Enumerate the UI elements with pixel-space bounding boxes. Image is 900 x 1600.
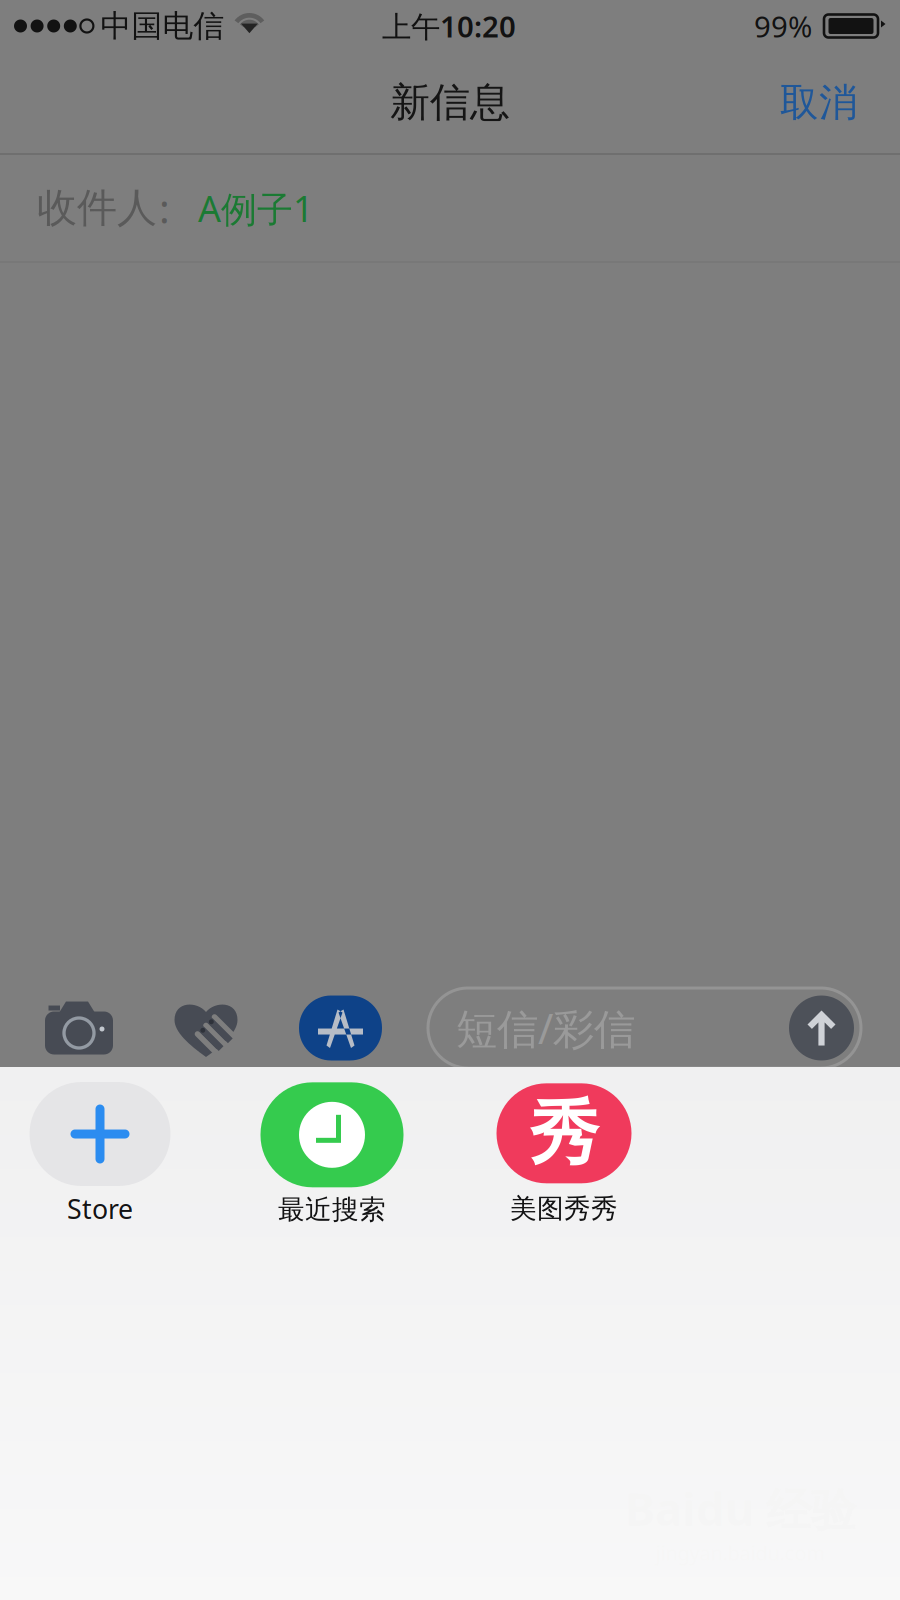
button[interactable]: Store xyxy=(0,1082,216,1226)
staticText: Store xyxy=(67,1191,133,1226)
button[interactable]: Send xyxy=(789,995,854,1060)
staticText: A例子1 xyxy=(198,184,314,232)
staticText: 秀 xyxy=(529,1091,598,1176)
button[interactable]: Digital Touch xyxy=(173,999,239,1057)
staticText: 取消 xyxy=(780,79,858,126)
staticText: 美图秀秀 xyxy=(510,1192,618,1225)
staticText: : xyxy=(159,181,170,234)
button[interactable]: 取消 xyxy=(758,57,880,148)
staticText: 新信息 xyxy=(390,78,510,127)
button[interactable]: Take photo xyxy=(45,1001,113,1054)
button[interactable]: 短信/彩信 xyxy=(428,988,861,1068)
staticText: 99% xyxy=(754,6,812,45)
staticText: 短信/彩信 xyxy=(456,1001,635,1055)
button[interactable]: iMessage apps xyxy=(299,995,382,1060)
staticText: 收件人 xyxy=(37,183,157,232)
staticText: 中国电信 xyxy=(100,7,224,45)
button[interactable]: 秀 xyxy=(448,1083,680,1225)
staticText: 上午10:20 xyxy=(382,6,516,45)
staticText: 最近搜索 xyxy=(278,1193,386,1226)
button[interactable]: 最近搜索 xyxy=(216,1082,448,1226)
